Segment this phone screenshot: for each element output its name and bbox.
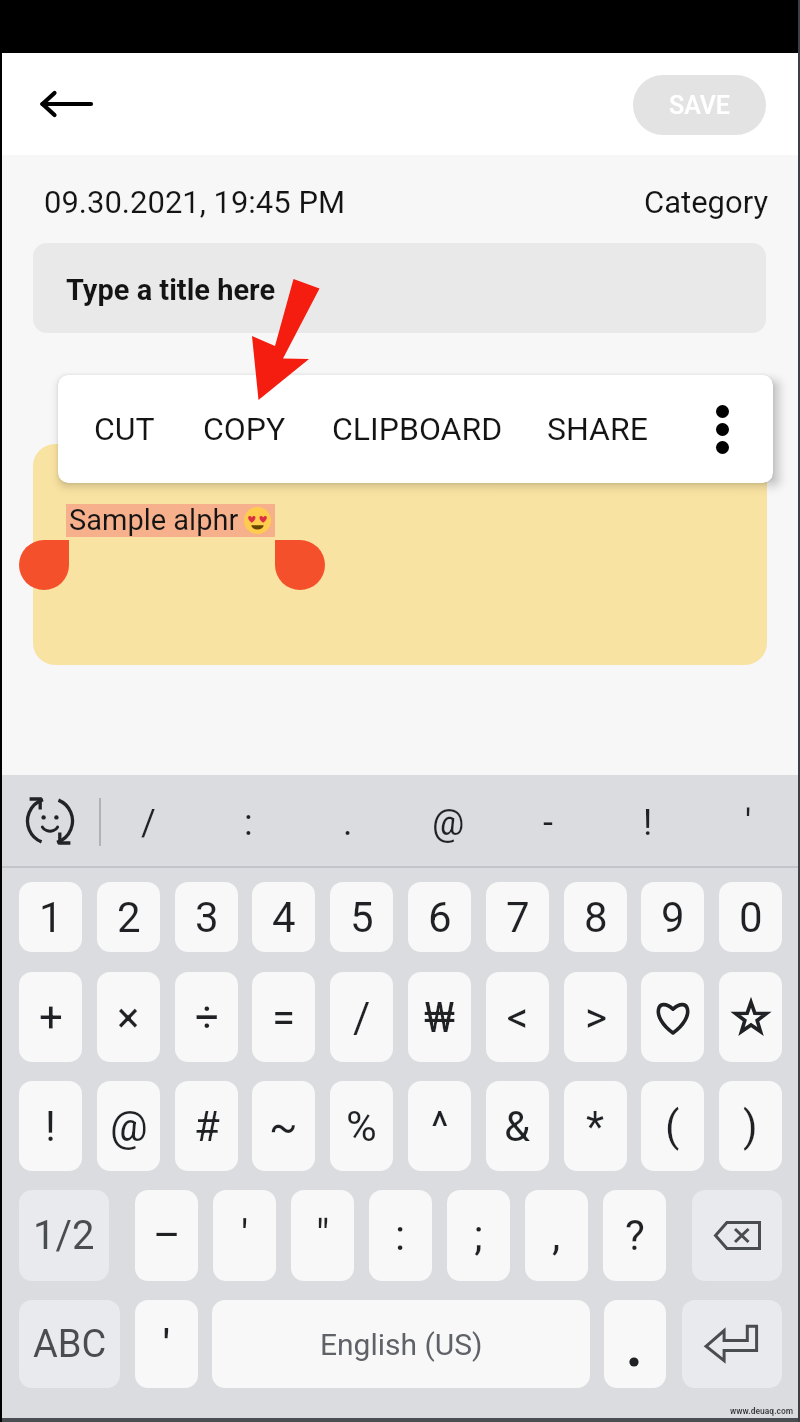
button[interactable]: COPY	[154, 375, 334, 483]
button[interactable]: 8	[564, 882, 627, 952]
button[interactable]: Emoji	[21, 792, 79, 850]
button[interactable]: (	[641, 1081, 704, 1171]
button[interactable]: /	[330, 972, 393, 1062]
staticText: #	[194, 1102, 220, 1151]
button[interactable]: Star	[719, 972, 782, 1062]
button[interactable]: &	[486, 1081, 549, 1171]
button[interactable]: :	[369, 1190, 432, 1281]
staticText: Category	[644, 184, 769, 220]
button[interactable]: 7	[486, 882, 549, 952]
button[interactable]: Category	[644, 184, 769, 220]
button[interactable]: %	[330, 1081, 393, 1171]
staticText: >	[585, 993, 607, 1042]
button[interactable]: Back	[21, 67, 111, 141]
button[interactable]: )	[719, 1081, 782, 1171]
button[interactable]: CLIPBOARD	[327, 375, 507, 483]
button[interactable]: !	[19, 1081, 82, 1171]
button[interactable]: Period	[604, 1300, 666, 1388]
staticText: 7	[506, 893, 530, 942]
staticText: <	[507, 993, 529, 1042]
button[interactable]: 0	[719, 882, 782, 952]
staticText: !	[643, 802, 653, 844]
button[interactable]: 1	[19, 882, 82, 952]
button[interactable]: -	[508, 780, 588, 866]
button[interactable]: ;	[447, 1190, 510, 1281]
staticText: @	[110, 1102, 148, 1151]
button[interactable]: Enter	[682, 1300, 782, 1388]
button[interactable]: ×	[97, 972, 160, 1062]
button[interactable]: –	[135, 1190, 198, 1281]
button[interactable]: CUT	[58, 375, 214, 483]
button[interactable]: #	[175, 1081, 238, 1171]
button[interactable]: !	[608, 780, 688, 866]
button[interactable]: 3	[175, 882, 238, 952]
staticText: ÷	[195, 993, 219, 1042]
staticText: SHARE	[547, 410, 648, 448]
button[interactable]: /	[108, 780, 188, 866]
button[interactable]: ÷	[175, 972, 238, 1062]
staticText: ?	[625, 1211, 645, 1260]
staticText: ;	[474, 1211, 483, 1260]
button[interactable]: SHARE	[507, 375, 687, 483]
button[interactable]: ABC	[19, 1300, 120, 1388]
staticText: ~	[269, 1102, 298, 1151]
staticText: %	[346, 1102, 377, 1151]
staticText: !	[45, 1102, 56, 1151]
button[interactable]: 6	[408, 882, 471, 952]
staticText: 4	[272, 893, 296, 942]
staticText: (	[665, 1102, 680, 1151]
button[interactable]: ₩	[408, 972, 471, 1062]
staticText: =	[272, 993, 296, 1042]
staticText: '	[163, 1321, 170, 1368]
staticText: /	[353, 993, 371, 1042]
staticText: @	[432, 802, 465, 844]
button[interactable]: :	[208, 780, 288, 866]
button[interactable]: =	[252, 972, 315, 1062]
staticText: '	[745, 802, 752, 844]
button[interactable]: SAVE	[633, 75, 766, 135]
button[interactable]: Type a title here	[33, 243, 766, 333]
button[interactable]: Heart	[641, 972, 704, 1062]
staticText: &	[504, 1102, 531, 1151]
staticText: 1	[39, 893, 63, 942]
button[interactable]: English (US)	[212, 1300, 590, 1388]
staticText: .	[343, 802, 353, 844]
button[interactable]: @	[408, 780, 488, 866]
button[interactable]: Backspace	[692, 1190, 782, 1281]
button[interactable]: ,	[525, 1190, 588, 1281]
button[interactable]: 2	[97, 882, 160, 952]
button[interactable]: "	[291, 1190, 354, 1281]
button[interactable]: ~	[252, 1081, 315, 1171]
button[interactable]: ^	[408, 1081, 471, 1171]
staticText: /	[141, 802, 156, 844]
button[interactable]: 5	[330, 882, 393, 952]
button[interactable]: 4	[252, 882, 315, 952]
button[interactable]: '	[135, 1300, 198, 1388]
staticText: 9	[661, 893, 685, 942]
button[interactable]: .	[308, 780, 388, 866]
staticText: 8	[584, 893, 608, 942]
button[interactable]: '	[213, 1190, 276, 1281]
button[interactable]: +	[19, 972, 82, 1062]
button[interactable]: <	[486, 972, 549, 1062]
button[interactable]: More options	[683, 375, 761, 483]
button[interactable]: >	[564, 972, 627, 1062]
staticText: 1/2	[33, 1212, 95, 1259]
staticText: 5	[350, 893, 374, 942]
button[interactable]: @	[97, 1081, 160, 1171]
staticText: CLIPBOARD	[332, 410, 503, 448]
staticText: *	[586, 1102, 605, 1151]
button[interactable]: 1/2	[19, 1190, 109, 1281]
button[interactable]: *	[564, 1081, 627, 1171]
staticText: www.deuaq.com	[730, 1406, 794, 1416]
staticText: COPY	[203, 410, 286, 448]
button[interactable]	[33, 444, 767, 665]
staticText: English (US)	[320, 1327, 483, 1362]
staticText: ×	[117, 993, 140, 1042]
staticText: Sample alphr	[69, 503, 239, 537]
button[interactable]: ?	[603, 1190, 666, 1281]
button[interactable]: '	[708, 780, 788, 866]
staticText: 09.30.2021, 19:45 PM	[44, 184, 346, 220]
button[interactable]: 9	[641, 882, 704, 952]
staticText: +	[39, 993, 63, 1042]
